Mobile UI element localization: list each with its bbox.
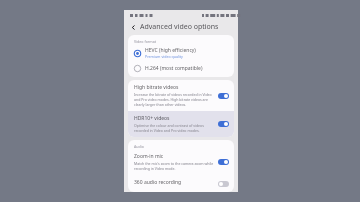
button[interactable]: H.264 (most compatible) <box>128 62 234 75</box>
button[interactable]: High bitrate videos <box>128 80 234 111</box>
staticText: H.264 (most compatible) <box>145 65 203 72</box>
button[interactable]: HDR10+ videos <box>128 111 234 137</box>
staticText: Match the mic's zoom to the camera zoom … <box>134 161 214 171</box>
button[interactable]: HEVC (high efficiency) <box>128 44 234 62</box>
staticText: Increase the bitrate of videos recorded … <box>134 92 214 107</box>
staticText: Premium video quality <box>145 54 183 59</box>
staticText: Audio <box>134 144 144 149</box>
staticText: 360 audio recording <box>134 179 182 186</box>
staticText: Zoom-in mic <box>134 153 164 160</box>
staticText: HDR10+ videos <box>134 115 170 122</box>
staticText: High bitrate videos <box>134 84 179 91</box>
staticText: HEVC (high efficiency) <box>145 47 196 54</box>
staticText: Advanced video options <box>140 22 219 32</box>
button[interactable]: 360 audio recording <box>128 175 234 192</box>
button[interactable]: Back <box>129 23 138 32</box>
staticText: Optimise the colour and contrast of vide… <box>134 123 214 133</box>
button[interactable]: Zoom-in mic <box>128 149 234 175</box>
staticText: Video format <box>134 39 156 44</box>
